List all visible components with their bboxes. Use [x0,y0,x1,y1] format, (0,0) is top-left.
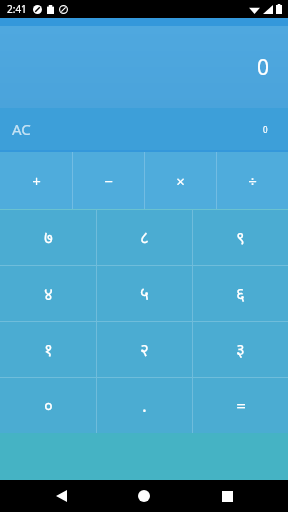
staticText: ८ [140,226,149,249]
staticText: 0 [257,53,270,82]
staticText: 0 [263,124,268,135]
staticText: ० [44,394,53,417]
staticText: ÷ [248,171,257,191]
button[interactable]: ÷ [217,152,288,209]
staticText: ९ [236,226,245,249]
button[interactable]: AC [0,108,288,150]
staticText: − [104,171,113,191]
staticText: 2:41 [7,2,27,16]
button[interactable]: ४ [0,266,96,321]
staticText: × [176,171,185,191]
button[interactable]: ० [0,378,96,433]
staticText: . [142,393,147,418]
button[interactable]: = [193,378,288,433]
button[interactable]: ३ [193,322,288,377]
staticText: १ [44,338,53,361]
button[interactable]: Recent apps [214,483,240,509]
button[interactable]: − [73,152,144,209]
button[interactable]: + [0,152,72,209]
button[interactable]: ६ [193,266,288,321]
staticText: + [32,171,41,191]
staticText: ६ [236,282,245,305]
staticText: ३ [236,338,245,361]
staticText: ४ [44,282,53,305]
button[interactable]: × [145,152,216,209]
button[interactable]: १ [0,322,96,377]
button[interactable]: ७ [0,210,96,265]
button[interactable]: ८ [97,210,192,265]
button[interactable]: २ [97,322,192,377]
button[interactable]: Home [130,482,158,510]
button[interactable]: Back [48,483,74,509]
staticText: ७ [44,226,53,249]
button[interactable]: ९ [193,210,288,265]
staticText: AC [12,119,31,139]
staticText: २ [140,338,149,361]
button[interactable]: ५ [97,266,192,321]
button[interactable]: . [97,378,192,433]
staticText: = [236,394,246,417]
staticText: ५ [140,282,149,305]
